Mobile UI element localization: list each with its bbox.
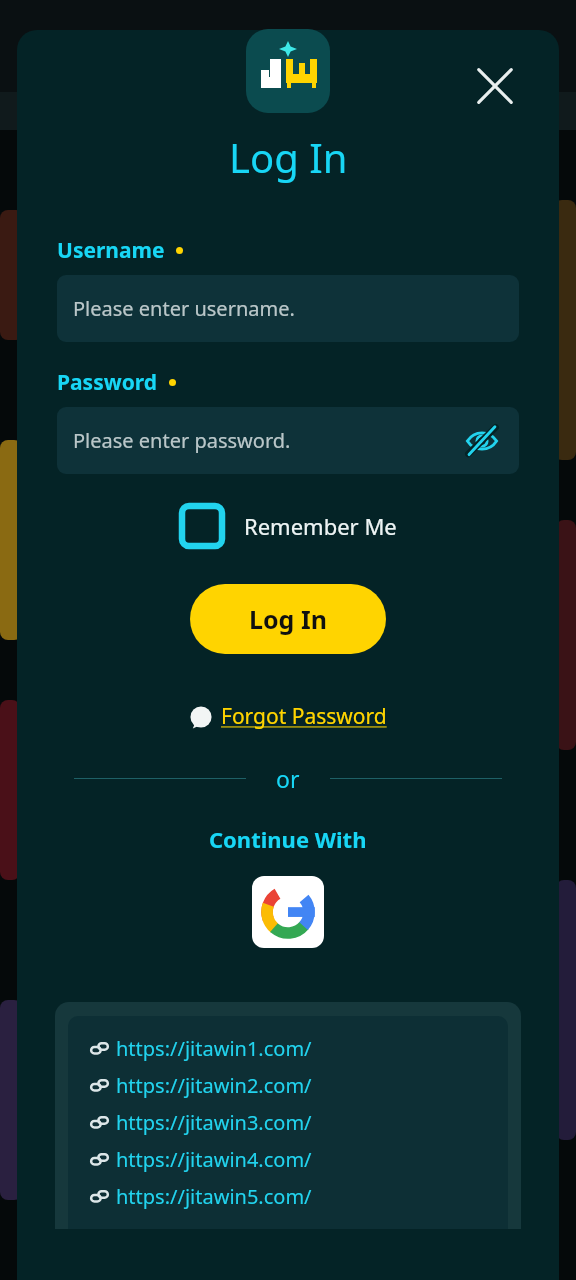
staticText: Password bbox=[57, 368, 158, 397]
staticText: Forgot Password bbox=[221, 702, 387, 731]
button[interactable]: Log In bbox=[190, 584, 386, 654]
button[interactable]: Remember Me bbox=[174, 500, 403, 552]
staticText: https://jitawin5.com/ bbox=[116, 1183, 312, 1210]
button[interactable]: https://jitawin3.com/ bbox=[90, 1104, 508, 1141]
button[interactable]: Please enter password. bbox=[57, 407, 519, 474]
staticText: Log In bbox=[229, 130, 348, 184]
button[interactable]: https://jitawin4.com/ bbox=[90, 1141, 508, 1178]
staticText: https://jitawin1.com/ bbox=[116, 1035, 312, 1062]
button[interactable]: Show password bbox=[461, 420, 503, 462]
staticText: Continue With bbox=[209, 824, 367, 854]
staticText: or bbox=[276, 763, 300, 794]
staticText: Log In bbox=[249, 602, 327, 636]
staticText: Remember Me bbox=[244, 511, 397, 541]
button[interactable]: https://jitawin2.com/ bbox=[90, 1067, 508, 1104]
button[interactable]: Continue with Google bbox=[252, 876, 324, 948]
button[interactable]: https://jitawin1.com/ bbox=[90, 1030, 508, 1067]
button[interactable]: https://jitawin5.com/ bbox=[90, 1178, 508, 1215]
button[interactable]: Close bbox=[471, 62, 519, 110]
button[interactable]: Forgot Password bbox=[189, 702, 387, 731]
staticText: Please enter password. bbox=[73, 427, 291, 454]
staticText: Please enter username. bbox=[73, 295, 295, 322]
button[interactable]: Please enter username. bbox=[57, 275, 519, 342]
staticText: Username bbox=[57, 236, 165, 265]
staticText: https://jitawin2.com/ bbox=[116, 1072, 312, 1099]
staticText: https://jitawin3.com/ bbox=[116, 1109, 312, 1136]
staticText: https://jitawin4.com/ bbox=[116, 1146, 312, 1173]
